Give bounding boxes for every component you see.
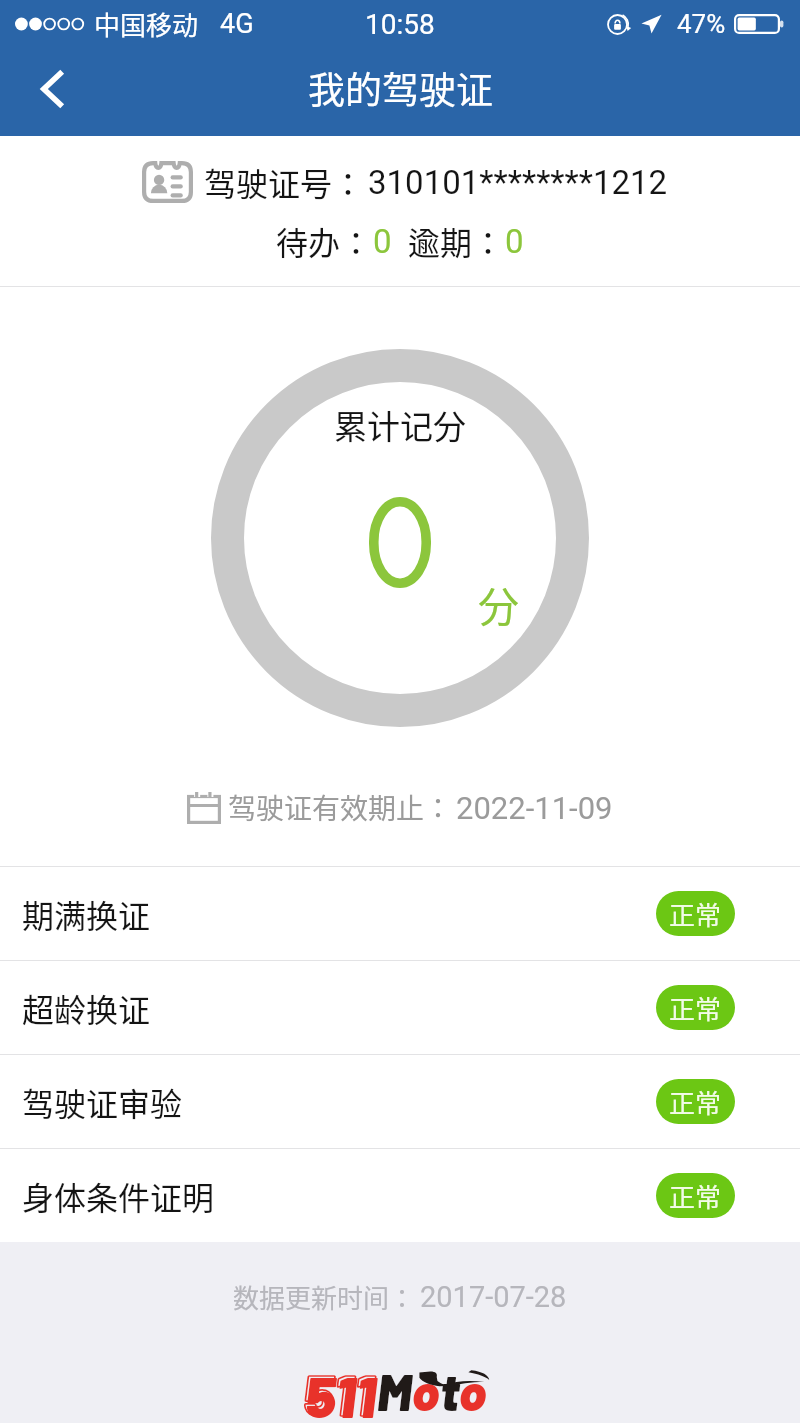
staticText: 2022-11-09 <box>456 790 613 826</box>
staticText: 中国移动 <box>94 5 199 43</box>
staticText: 47% <box>677 9 726 39</box>
button[interactable]: 驾驶证审验 <box>0 1055 800 1148</box>
staticText: 数据更新时间： <box>233 1278 416 1316</box>
staticText: 分 <box>478 574 519 633</box>
staticText: 2017-07-28 <box>420 1280 567 1314</box>
staticText: o <box>459 1361 487 1421</box>
staticText: 驾驶证号： <box>204 159 365 205</box>
staticText: 正常 <box>669 895 722 933</box>
staticText: 0 <box>373 222 392 261</box>
staticText: t <box>440 1361 459 1421</box>
staticText: 511 <box>303 1359 374 1423</box>
staticText: 期满换证 <box>22 891 151 937</box>
staticText: 逾期： <box>408 218 505 264</box>
button[interactable]: Back <box>0 48 105 136</box>
staticText: 驾驶证有效期止： <box>228 787 453 828</box>
staticText: 310101********1212 <box>368 163 668 202</box>
button[interactable]: 身体条件证明 <box>0 1149 800 1242</box>
button[interactable]: 超龄换证 <box>0 961 800 1054</box>
staticText: 驾驶证审验 <box>22 1079 183 1125</box>
staticText: 超龄换证 <box>22 985 151 1031</box>
staticText: 身体条件证明 <box>22 1173 215 1219</box>
staticText: 累计记分 <box>334 401 466 449</box>
staticText: o <box>412 1361 440 1421</box>
staticText: 10:58 <box>365 8 435 41</box>
staticText: 正常 <box>669 1083 722 1121</box>
button[interactable]: 期满换证 <box>0 867 800 960</box>
staticText: 我的驾驶证 <box>308 61 493 115</box>
staticText: 正常 <box>669 1177 722 1215</box>
staticText: 4G <box>220 8 254 40</box>
staticText: M <box>377 1361 412 1421</box>
staticText: 待办： <box>276 218 373 264</box>
staticText: 0 <box>505 222 524 261</box>
staticText: 511 <box>305 1361 376 1423</box>
staticText: 正常 <box>669 989 722 1027</box>
